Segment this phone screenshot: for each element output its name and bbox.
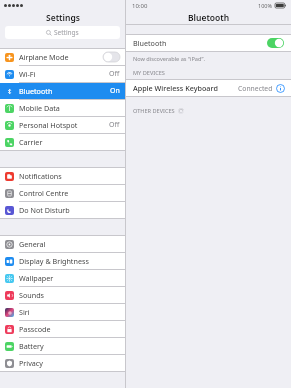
button[interactable]: More Info [276,84,285,93]
staticText: 100% [258,2,273,9]
staticText: Passcode [19,324,120,334]
staticText: OTHER DEVICES [133,107,175,115]
button[interactable]: Privacy [0,355,125,371]
staticText: Bluetooth [133,38,267,48]
button[interactable]: Siri [0,304,125,320]
button[interactable]: Bluetooth [126,35,291,51]
button[interactable]: General [0,236,125,252]
staticText: Wi-Fi [19,69,109,79]
staticText: Control Centre [19,188,120,198]
staticText: Carrier [19,137,120,147]
button[interactable]: Settings [5,26,120,39]
button[interactable]: Sounds [0,287,125,303]
staticText: 10:00 [132,2,148,10]
staticText: Now discoverable as “iPad”. [133,55,205,63]
button[interactable]: Control Centre [0,185,125,201]
button[interactable]: Carrier [0,134,125,150]
staticText: On [110,86,120,96]
staticText: Sounds [19,290,120,300]
staticText: Off [109,69,120,79]
button[interactable]: Wallpaper [0,270,125,286]
staticText: Mobile Data [19,103,120,113]
button[interactable]: Apple Wireless Keyboard [126,80,291,96]
staticText: Privacy [19,358,120,368]
staticText: Airplane Mode [19,52,103,62]
staticText: General [19,239,120,249]
staticText: Battery [19,341,120,351]
button[interactable]: Airplane Mode [0,49,125,65]
button[interactable]: Bluetooth [0,83,125,99]
staticText: Siri [19,307,120,317]
staticText: Wallpaper [19,273,120,283]
staticText: Do Not Disturb [19,205,120,215]
button[interactable]: Notifications [0,168,125,184]
staticText: Apple Wireless Keyboard [133,83,238,93]
button[interactable]: Passcode [0,321,125,337]
staticText: Personal Hotspot [19,120,109,130]
staticText: Notifications [19,171,120,181]
staticText: Bluetooth [19,86,110,96]
staticText: Off [109,120,120,130]
button[interactable]: Do Not Disturb [0,202,125,218]
staticText: Settings [54,28,79,37]
button[interactable]: Wi-Fi [0,66,125,82]
staticText: MY DEVICES [133,69,165,77]
staticText: Display & Brightness [19,256,120,266]
button[interactable]: Mobile Data [0,100,125,116]
staticText: Settings [46,12,80,24]
staticText: Bluetooth [188,12,230,24]
button[interactable]: Personal Hotspot [0,117,125,133]
staticText: Connected [238,84,273,93]
button[interactable]: Battery [0,338,125,354]
button[interactable]: Display & Brightness [0,253,125,269]
